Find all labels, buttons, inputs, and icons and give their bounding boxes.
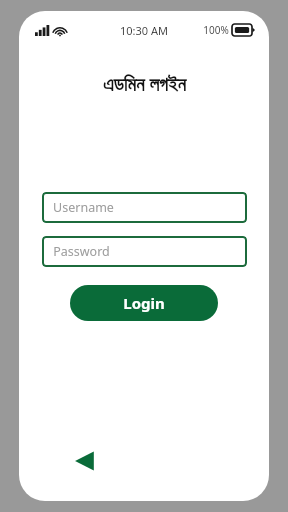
staticText: Username [53,199,114,216]
button[interactable]: Login [70,285,218,321]
staticText: Password [53,243,110,260]
button[interactable]: Password [42,236,247,267]
button[interactable]: Username [42,192,247,223]
staticText: 10:30 AM [120,23,168,38]
staticText: Login [123,293,165,313]
button[interactable]: Back [62,437,110,485]
staticText: এডমিন লগইন [103,71,186,97]
staticText: 100% [203,23,229,37]
